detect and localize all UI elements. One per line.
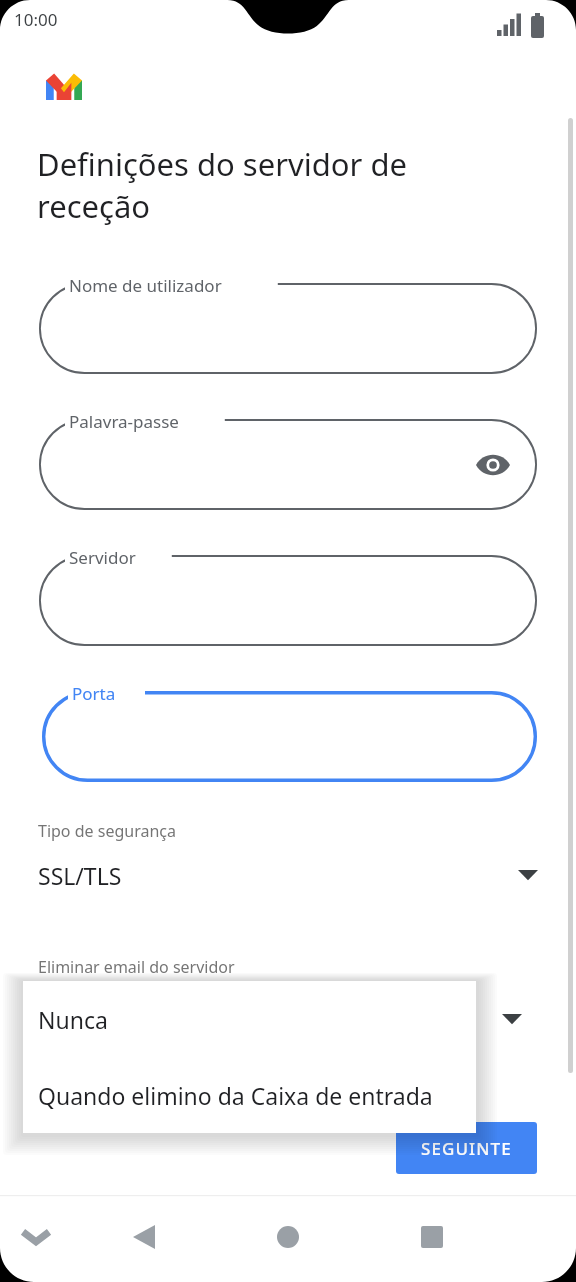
button[interactable]: Quando elimino da Caixa de entrada <box>23 1057 476 1133</box>
staticText: Nome de utilizador <box>69 274 222 297</box>
button[interactable]: Home <box>260 1209 316 1265</box>
button[interactable]: Hide keyboard <box>8 1209 64 1265</box>
staticText: Definições do servidor de receção <box>37 143 507 227</box>
staticText: 10:00 <box>14 8 58 31</box>
staticText: Palavra-passe <box>69 410 179 433</box>
staticText: Eliminar email do servidor <box>38 956 235 978</box>
staticText: SSL/TLS <box>38 860 122 891</box>
button[interactable]: Servidor <box>39 555 537 646</box>
button[interactable]: Palavra-passe <box>39 419 537 510</box>
staticText: Quando elimino da Caixa de entrada <box>38 1080 433 1111</box>
button[interactable]: Recent apps <box>404 1209 460 1265</box>
button[interactable]: Back <box>116 1209 172 1265</box>
staticText: Porta <box>72 682 116 705</box>
staticText: Tipo de segurança <box>38 820 176 842</box>
staticText: Servidor <box>69 546 136 569</box>
button[interactable]: Show password <box>471 443 515 487</box>
button[interactable]: Gmail <box>46 72 82 100</box>
button[interactable]: Nunca <box>23 981 476 1057</box>
button[interactable]: Porta <box>42 691 537 782</box>
staticText: Nunca <box>38 1004 108 1035</box>
staticText: SEGUINTE <box>421 1137 512 1160</box>
button[interactable]: Tipo de segurança <box>38 820 538 891</box>
button[interactable]: SEGUINTE <box>396 1122 537 1174</box>
button[interactable]: Nome de utilizador <box>39 283 537 374</box>
